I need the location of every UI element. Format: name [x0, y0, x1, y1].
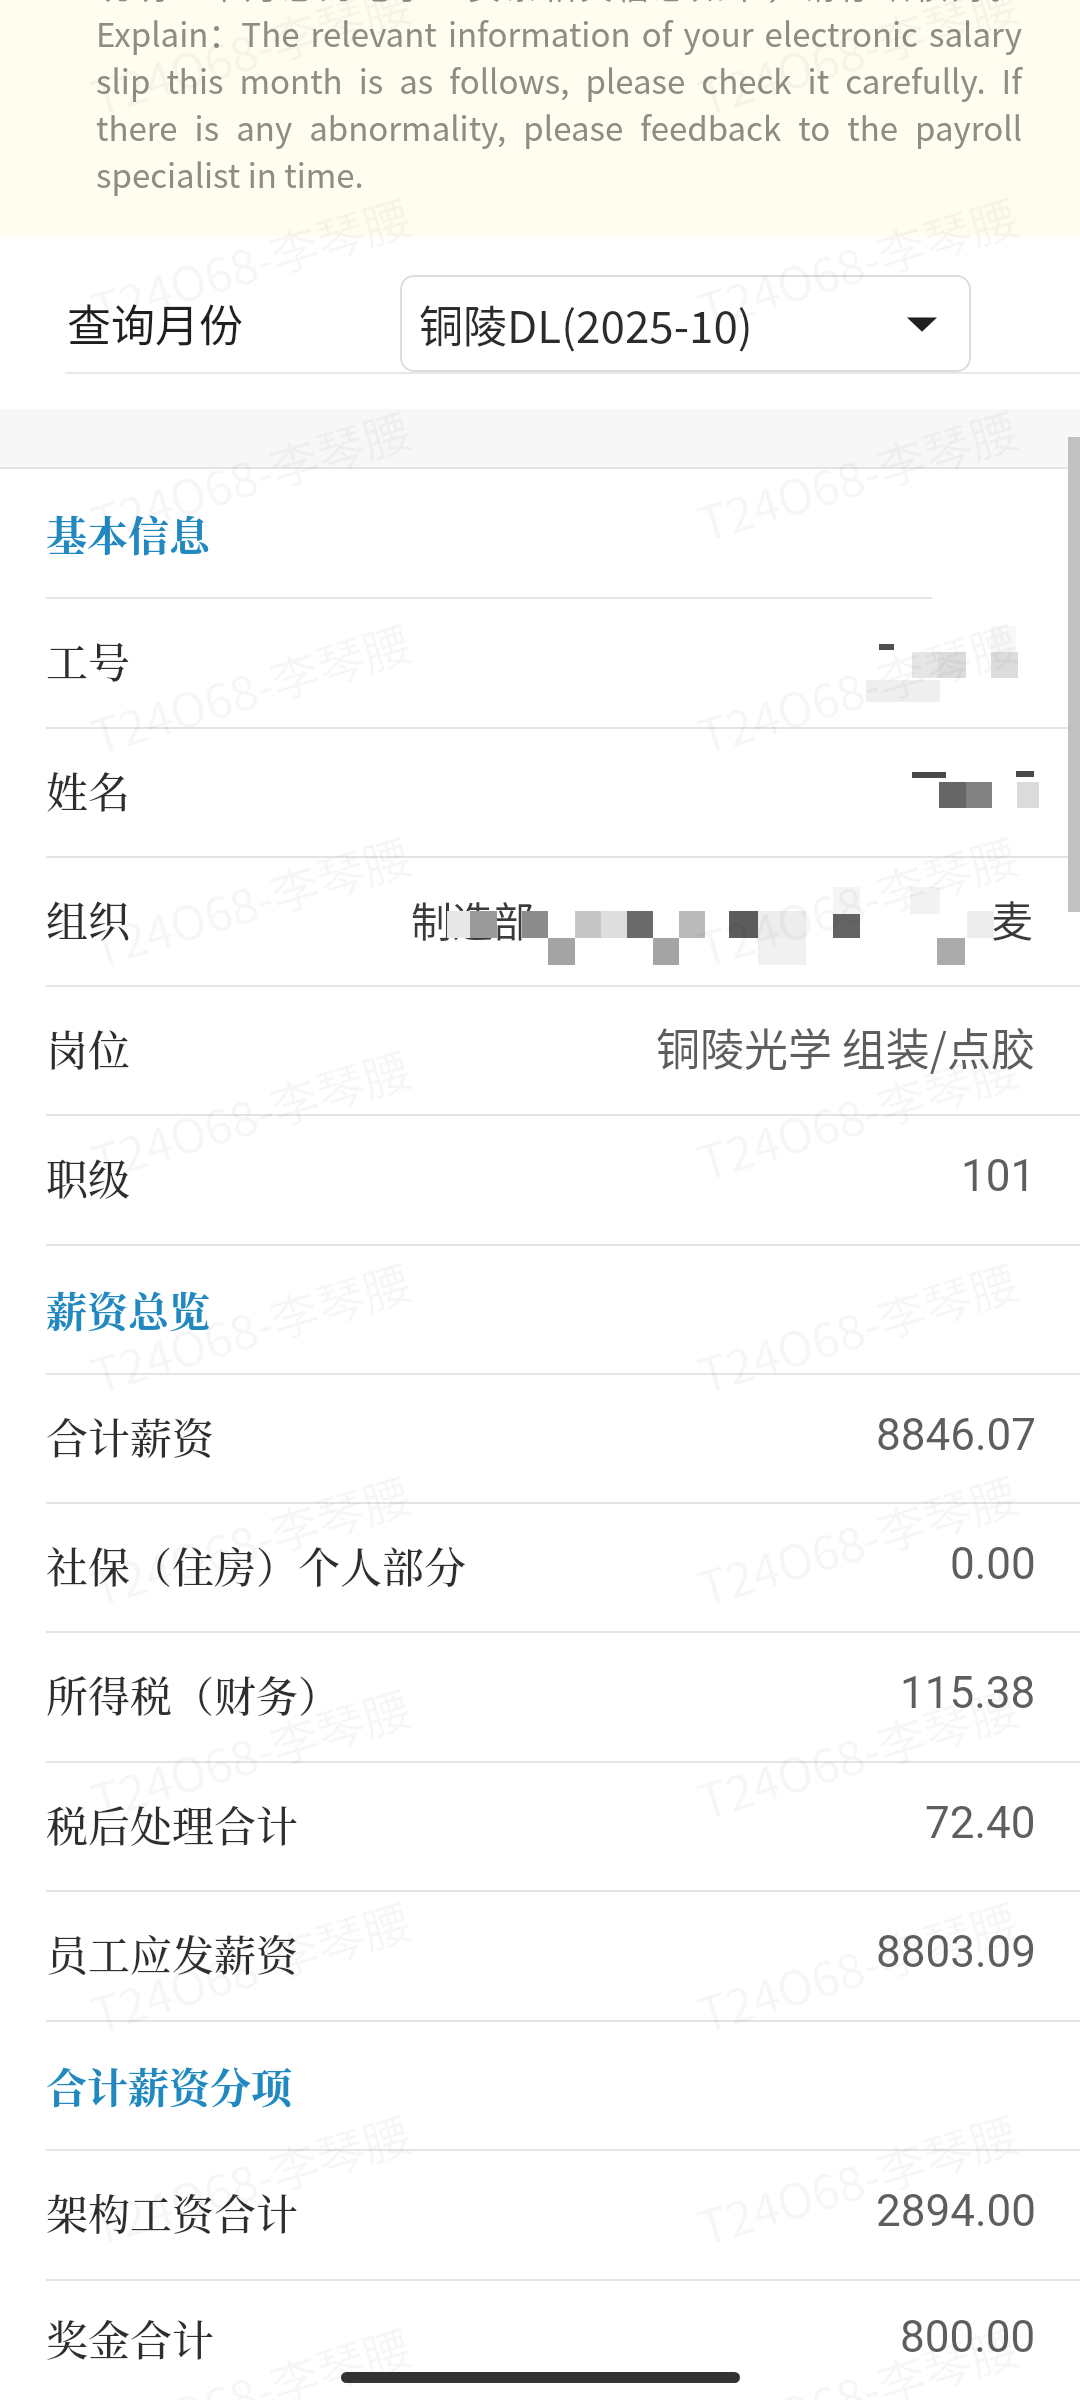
staticText: 工号: [46, 630, 131, 690]
staticText: 8803.09: [876, 1926, 1036, 1978]
button[interactable]: 薪资总览: [0, 1246, 1080, 1373]
button[interactable]: 职级: [0, 1116, 1080, 1244]
staticText: 说明：本月您的电子工资条相关信息如下，请仔细核对。Explain：The rel…: [96, 0, 1022, 197]
button[interactable]: 社保（住房）个人部分: [0, 1504, 1080, 1631]
staticText: 2894.00: [876, 2185, 1036, 2237]
staticText: 制造部: [411, 889, 534, 948]
staticText: 115.38: [900, 1667, 1036, 1719]
button[interactable]: 工号: [0, 599, 1080, 727]
staticText: 姓名: [46, 760, 131, 820]
staticText: 岗位: [46, 1018, 131, 1078]
button[interactable]: 姓名: [0, 729, 1080, 856]
staticText: 社保（住房）个人部分: [46, 1535, 467, 1595]
button[interactable]: 岗位: [0, 987, 1080, 1114]
staticText: 铜陵DL(2025-10): [419, 292, 753, 356]
staticText: 所得税（财务）: [46, 1664, 341, 1724]
staticText: 麦: [991, 888, 1034, 949]
staticText: 组织: [46, 889, 131, 949]
button[interactable]: 合计薪资: [0, 1375, 1080, 1502]
button[interactable]: 奖金合计: [0, 2281, 1080, 2400]
staticText: 架构工资合计: [46, 2182, 299, 2242]
button[interactable]: 铜陵DL(2025-10): [400, 275, 971, 372]
staticText: 查询月份: [67, 291, 243, 355]
button[interactable]: 基本信息: [0, 469, 1080, 597]
staticText: 铜陵光学 组装/点胶: [656, 1015, 1036, 1079]
staticText: 101: [961, 1150, 1036, 1202]
button[interactable]: 员工应发薪资: [0, 1892, 1080, 2020]
staticText: 税后处理合计: [46, 1794, 299, 1854]
staticText: 职级: [46, 1147, 131, 1207]
staticText: 奖金合计: [46, 2308, 215, 2368]
button[interactable]: 合计薪资分项: [0, 2022, 1080, 2149]
staticText: 基本信息: [46, 504, 210, 563]
staticText: 合计薪资: [46, 1406, 215, 1466]
staticText: 合计薪资分项: [46, 2056, 292, 2115]
staticText: 0.00: [950, 1538, 1036, 1590]
button[interactable]: 组织: [0, 858, 1080, 985]
staticText: 800.00: [900, 2311, 1036, 2363]
button[interactable]: 税后处理合计: [0, 1763, 1080, 1890]
staticText: 薪资总览: [46, 1280, 210, 1339]
staticText: 员工应发薪资: [46, 1923, 299, 1983]
button[interactable]: 架构工资合计: [0, 2151, 1080, 2279]
staticText: 72.40: [925, 1797, 1036, 1849]
button[interactable]: 所得税（财务）: [0, 1633, 1080, 1761]
staticText: 8846.07: [876, 1409, 1036, 1461]
